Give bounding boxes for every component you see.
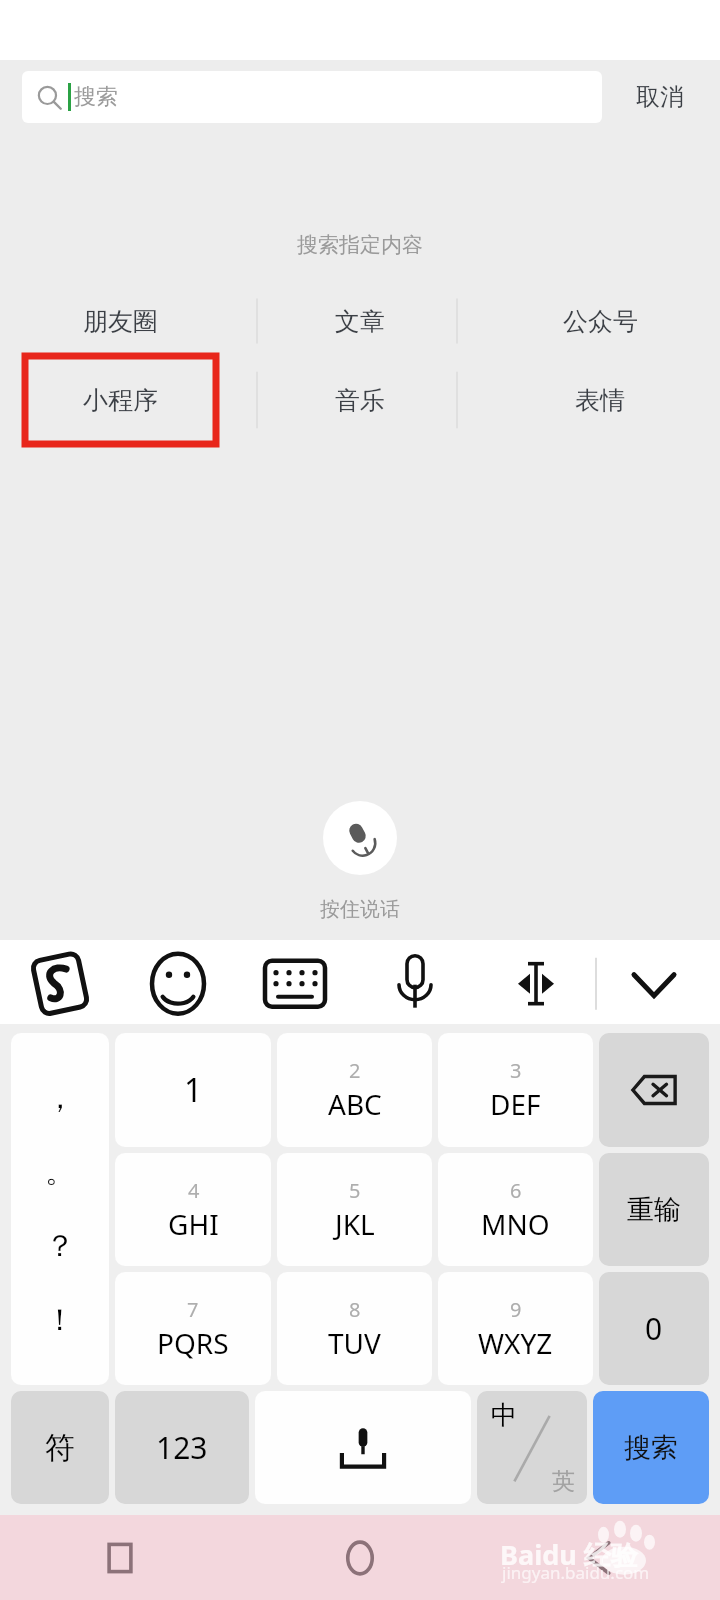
staticText: 4 — [188, 1177, 200, 1204]
button[interactable]: 搜索 — [22, 71, 602, 123]
button[interactable]: Keyboard layout — [238, 940, 356, 1024]
button[interactable]: 2 — [277, 1033, 432, 1147]
staticText: 小程序 — [83, 385, 158, 416]
button[interactable]: 9 — [438, 1272, 593, 1385]
button[interactable]: 公众号 — [480, 286, 720, 356]
button[interactable]: 搜索 — [593, 1391, 709, 1504]
button[interactable]: 符 — [11, 1391, 109, 1504]
staticText: PQRS — [157, 1324, 229, 1362]
staticText: 搜索 — [624, 1431, 678, 1465]
staticText: 5 — [349, 1177, 361, 1204]
button[interactable]: Emoji — [120, 940, 238, 1024]
staticText: ？ — [45, 1227, 75, 1265]
staticText: ABC — [328, 1085, 382, 1123]
staticText: 3 — [510, 1057, 522, 1084]
staticText: 9 — [510, 1296, 522, 1323]
staticText: 按住说话 — [320, 897, 400, 922]
staticText: Baidu 经验 — [500, 1536, 638, 1573]
button[interactable]: Recents — [0, 1515, 240, 1600]
staticText: jingyan.baidu.com — [502, 1561, 650, 1584]
button[interactable]: 小程序 — [25, 356, 216, 444]
staticText: 0 — [645, 1308, 663, 1349]
staticText: GHI — [168, 1205, 219, 1243]
staticText: JKL — [335, 1205, 375, 1243]
button[interactable]: Back — [480, 1515, 720, 1600]
button[interactable]: 6 — [438, 1153, 593, 1266]
staticText: 1 — [184, 1068, 203, 1112]
button[interactable]: Space / voice — [255, 1391, 471, 1504]
staticText: 取消 — [636, 82, 684, 112]
staticText: ！ — [45, 1301, 75, 1339]
button[interactable]: 1 — [115, 1033, 271, 1147]
staticText: 搜索指定内容 — [0, 232, 720, 258]
staticText: 重输 — [627, 1193, 681, 1227]
staticText: WXYZ — [478, 1324, 553, 1362]
button[interactable]: 文章 — [240, 286, 480, 356]
staticText: 8 — [349, 1296, 361, 1323]
button[interactable]: 重输 — [599, 1153, 709, 1266]
button[interactable]: Chinese English toggle — [477, 1391, 587, 1504]
staticText: 符 — [45, 1429, 75, 1467]
staticText: TUV — [328, 1324, 381, 1362]
button[interactable]: Move cursor — [474, 940, 598, 1024]
button[interactable]: 表情 — [480, 356, 720, 444]
staticText: 7 — [187, 1296, 199, 1323]
button[interactable]: 0 — [599, 1272, 709, 1385]
button[interactable]: 8 — [277, 1272, 432, 1385]
staticText: 英 — [552, 1467, 575, 1496]
button[interactable]: 4 — [115, 1153, 271, 1266]
button[interactable]: 音乐 — [240, 356, 480, 444]
button[interactable]: Home — [240, 1515, 480, 1600]
staticText: 搜索 — [74, 83, 118, 111]
staticText: 表情 — [575, 385, 625, 416]
button[interactable]: ， — [11, 1033, 109, 1385]
staticText: DEF — [490, 1085, 541, 1123]
staticText: ， — [45, 1079, 75, 1117]
button[interactable]: Input method — [0, 940, 120, 1024]
button[interactable]: 5 — [277, 1153, 432, 1266]
staticText: 6 — [510, 1177, 522, 1204]
button[interactable]: Hide keyboard — [608, 940, 720, 1024]
button[interactable]: 123 — [115, 1391, 249, 1504]
button[interactable]: Delete — [599, 1033, 709, 1147]
staticText: 朋友圈 — [83, 306, 158, 337]
button[interactable]: Voice search — [323, 801, 397, 875]
staticText: 文章 — [335, 306, 385, 337]
staticText: MNO — [481, 1205, 550, 1243]
staticText: 2 — [349, 1057, 361, 1084]
button[interactable]: 朋友圈 — [0, 286, 240, 356]
button[interactable]: 7 — [115, 1272, 271, 1385]
button[interactable]: 3 — [438, 1033, 593, 1147]
staticText: 音乐 — [335, 385, 385, 416]
staticText: 中 — [491, 1399, 517, 1432]
button[interactable]: 取消 — [614, 71, 706, 123]
staticText: 123 — [156, 1427, 208, 1468]
staticText: 公众号 — [563, 306, 638, 337]
button[interactable]: Voice input — [356, 940, 474, 1024]
staticText: 。 — [45, 1153, 75, 1191]
